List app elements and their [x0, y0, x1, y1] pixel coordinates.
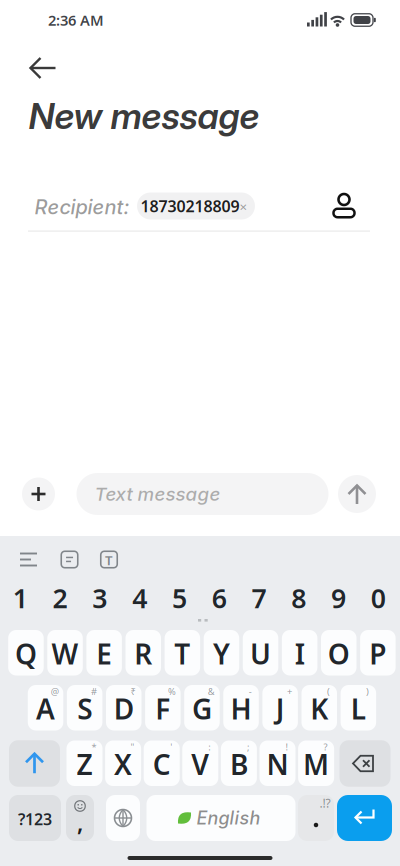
staticText: 1	[13, 580, 28, 616]
button[interactable]	[22, 477, 55, 510]
button[interactable]	[338, 475, 376, 513]
button[interactable]: E	[86, 630, 122, 675]
button[interactable]: M	[298, 740, 334, 786]
staticText: ,	[77, 807, 83, 837]
button[interactable]: 3	[84, 584, 116, 612]
button[interactable]: J	[262, 685, 298, 730]
button[interactable]: F	[145, 685, 181, 730]
staticText: ₹	[130, 685, 135, 698]
button[interactable]: R	[125, 630, 161, 675]
staticText: V	[191, 746, 209, 783]
button[interactable]: D	[106, 685, 141, 730]
staticText: 6	[212, 580, 227, 616]
button[interactable]	[330, 192, 357, 219]
button[interactable]: H	[223, 685, 259, 730]
staticText: Text message	[94, 483, 220, 505]
button[interactable]: C	[144, 740, 180, 786]
staticText: O	[328, 635, 350, 672]
button[interactable]	[106, 795, 140, 841]
staticText: !	[285, 741, 288, 753]
staticText: %	[168, 685, 176, 698]
staticText: 9	[331, 580, 346, 616]
staticText: F	[155, 690, 170, 727]
button[interactable]: English	[146, 795, 295, 841]
staticText: 2:36 AM	[48, 10, 104, 30]
button[interactable]: Z	[66, 740, 102, 786]
button[interactable]: T	[101, 551, 117, 568]
button[interactable]: ?123	[9, 795, 61, 841]
button[interactable]: U	[243, 630, 278, 675]
button[interactable]: G	[184, 685, 220, 730]
button[interactable]: 0	[362, 584, 394, 612]
staticText: P	[369, 635, 386, 672]
staticText: 0	[371, 580, 386, 616]
staticText: Y	[213, 635, 230, 672]
staticText: C	[153, 746, 171, 783]
button[interactable]: A	[28, 685, 63, 730]
button[interactable]: P	[360, 630, 396, 675]
button[interactable]: X	[105, 740, 141, 786]
button[interactable]: O	[321, 630, 356, 675]
staticText: :	[208, 741, 211, 753]
button[interactable]: V	[182, 740, 218, 786]
button[interactable]	[61, 551, 78, 568]
button[interactable]: 5	[163, 584, 195, 612]
staticText: ?123	[18, 808, 52, 830]
staticText: +	[287, 685, 292, 698]
button[interactable]	[339, 740, 390, 787]
staticText: New message	[28, 94, 259, 138]
button[interactable]: 9	[322, 584, 354, 612]
staticText: T	[174, 635, 190, 672]
staticText: ×	[239, 198, 247, 215]
button[interactable]: 4	[124, 584, 156, 612]
staticText: K	[310, 690, 328, 727]
staticText: M	[303, 746, 329, 783]
button[interactable]	[18, 551, 39, 567]
button[interactable]: L	[341, 685, 376, 730]
button[interactable]: Text message	[76, 473, 328, 515]
button[interactable]: 8	[283, 584, 315, 612]
staticText: T	[105, 551, 113, 569]
button[interactable]: T	[165, 630, 200, 675]
button[interactable]: 7	[243, 584, 275, 612]
staticText: E	[96, 635, 112, 672]
staticText: 7	[251, 580, 266, 616]
staticText: ;	[247, 741, 250, 753]
staticText: )	[366, 685, 369, 698]
button[interactable]: 2	[44, 584, 76, 612]
button[interactable]: I	[282, 630, 317, 675]
button[interactable]	[337, 795, 392, 841]
button[interactable]: W	[47, 630, 83, 675]
button[interactable]	[9, 740, 60, 787]
button[interactable]: B	[221, 740, 257, 786]
staticText: L	[351, 690, 366, 727]
button[interactable]: 1	[4, 584, 36, 612]
button[interactable]: S	[67, 685, 102, 730]
staticText: *	[91, 741, 96, 753]
staticText: B	[230, 746, 248, 783]
button[interactable]: K	[301, 685, 337, 730]
staticText: X	[114, 746, 132, 783]
staticText: &	[208, 685, 215, 698]
staticText: I	[295, 635, 305, 672]
staticText: 8	[291, 580, 306, 616]
staticText: J	[276, 690, 285, 727]
button[interactable]	[29, 55, 58, 81]
button[interactable]: Q	[8, 630, 44, 675]
staticText: Z	[76, 746, 92, 783]
button[interactable]: .!?	[298, 795, 334, 841]
staticText: A	[36, 690, 55, 727]
staticText: 3	[92, 580, 107, 616]
staticText: '	[170, 741, 172, 753]
button[interactable]: 6	[203, 584, 235, 612]
staticText: .!?	[319, 795, 330, 811]
button[interactable]: N	[259, 740, 295, 786]
staticText: #	[91, 685, 97, 698]
staticText: @	[51, 685, 59, 698]
staticText: Q	[15, 635, 37, 672]
staticText: S	[77, 690, 92, 727]
button[interactable]: Y	[204, 630, 239, 675]
staticText: Recipient:	[34, 195, 129, 219]
button[interactable]: ,	[66, 795, 94, 841]
button[interactable]: 18730218809	[137, 192, 255, 219]
